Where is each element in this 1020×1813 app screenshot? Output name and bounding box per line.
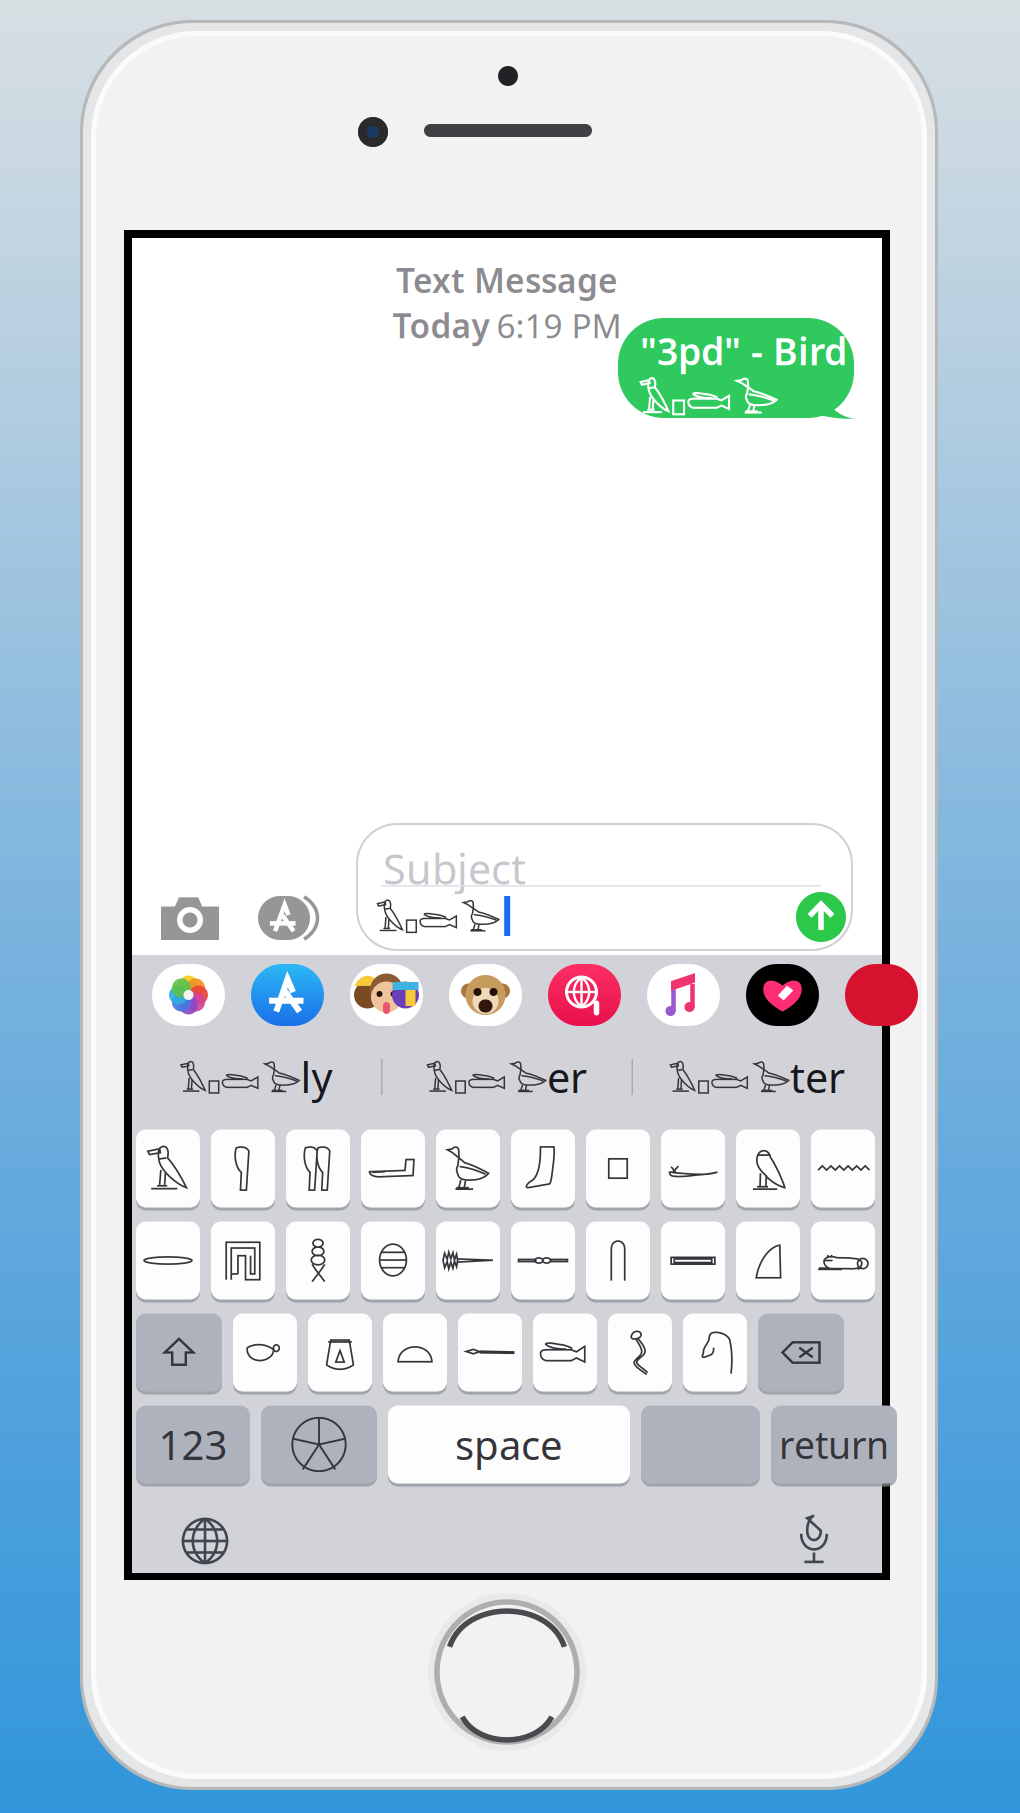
button[interactable] <box>286 1220 350 1301</box>
button[interactable] <box>361 1220 425 1301</box>
staticText: return <box>779 1420 889 1469</box>
staticText: Subject <box>383 841 526 896</box>
button[interactable] <box>811 1220 875 1301</box>
button[interactable] <box>641 1404 760 1485</box>
button[interactable]: Camera <box>161 896 219 940</box>
button[interactable] <box>436 1128 500 1209</box>
button[interactable]: App Store <box>251 964 324 1026</box>
button[interactable] <box>211 1220 275 1301</box>
button[interactable] <box>136 1312 222 1393</box>
button[interactable] <box>683 1312 747 1393</box>
staticText: Today <box>392 303 489 348</box>
button[interactable] <box>736 1220 800 1301</box>
button[interactable] <box>383 1312 447 1393</box>
button[interactable] <box>736 1128 800 1209</box>
button[interactable]: Dictation <box>784 1507 844 1571</box>
button[interactable] <box>511 1128 575 1209</box>
button[interactable] <box>261 1404 377 1485</box>
button[interactable] <box>811 1128 875 1209</box>
staticText: Text Message <box>396 258 618 302</box>
button[interactable]: space <box>388 1404 630 1485</box>
button[interactable] <box>211 1128 275 1209</box>
button[interactable]: Health <box>746 964 819 1026</box>
button[interactable] <box>286 1128 350 1209</box>
button[interactable]: More <box>845 964 918 1026</box>
button[interactable] <box>661 1220 725 1301</box>
button[interactable] <box>136 1128 200 1209</box>
button[interactable] <box>586 1128 650 1209</box>
button[interactable]: Memoji <box>350 964 423 1026</box>
button[interactable]: Music <box>647 964 720 1026</box>
button[interactable] <box>136 1220 200 1301</box>
button[interactable] <box>586 1220 650 1301</box>
button[interactable] <box>458 1312 522 1393</box>
button[interactable] <box>308 1312 372 1393</box>
button[interactable] <box>233 1312 297 1393</box>
button[interactable] <box>661 1128 725 1209</box>
button[interactable] <box>608 1312 672 1393</box>
staticText: ter <box>790 1050 845 1104</box>
button[interactable]: App Store <box>258 896 322 940</box>
button[interactable]: return <box>771 1404 897 1485</box>
button[interactable] <box>361 1128 425 1209</box>
button[interactable]: ly <box>132 1045 381 1109</box>
button[interactable]: er <box>382 1045 631 1109</box>
staticText: "3pd" - Bird <box>640 326 847 376</box>
staticText: space <box>455 1418 563 1471</box>
button[interactable]: ter <box>633 1045 882 1109</box>
button[interactable]: 123 <box>136 1404 250 1485</box>
button[interactable] <box>533 1312 597 1393</box>
button[interactable]: #images <box>548 964 621 1026</box>
button[interactable]: Switch keyboard <box>173 1509 237 1573</box>
button[interactable]: Send <box>796 892 846 942</box>
button[interactable] <box>758 1312 844 1393</box>
staticText: 6:19 PM <box>496 303 621 348</box>
button[interactable] <box>436 1220 500 1301</box>
staticText: er <box>547 1050 587 1104</box>
button[interactable]: Animoji <box>449 964 522 1026</box>
staticText: 123 <box>158 1418 227 1471</box>
button[interactable]: Photos <box>152 964 225 1026</box>
button[interactable] <box>511 1220 575 1301</box>
staticText: ly <box>301 1050 333 1104</box>
